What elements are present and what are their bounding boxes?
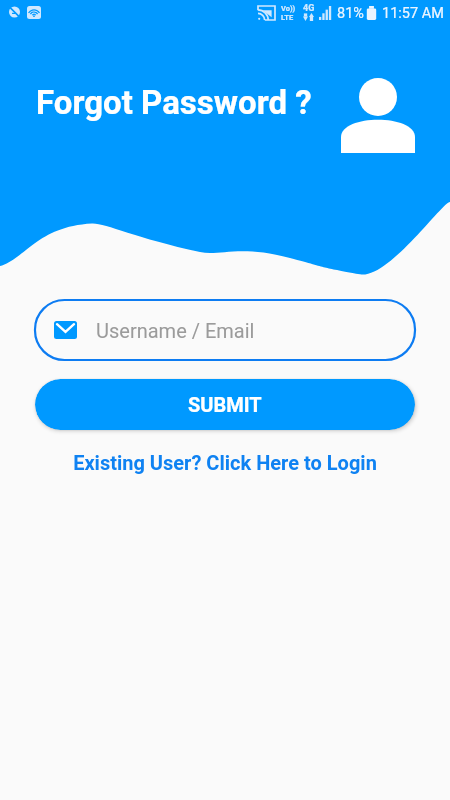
staticText: Forgot Password ? <box>36 83 312 122</box>
staticText: 4G <box>303 3 315 14</box>
staticText: Username / Email <box>96 319 255 342</box>
staticText: SUBMIT <box>188 393 262 416</box>
other: Battery <box>366 6 377 20</box>
staticText: LTE <box>281 13 294 22</box>
other: Wi-Fi <box>27 6 41 19</box>
button[interactable]: SUBMIT <box>35 379 415 430</box>
other: Signal strength <box>319 6 332 20</box>
staticText: 11:57 AM <box>382 5 444 22</box>
other: Cast <box>258 6 275 20</box>
button[interactable]: Username / Email <box>34 299 415 360</box>
other: Sound off <box>9 6 20 18</box>
button[interactable]: Existing User? Click Here to Login <box>0 446 450 478</box>
staticText: Existing User? Click Here to Login <box>73 451 377 474</box>
staticText: Vo)) <box>281 4 296 13</box>
staticText: 81% <box>337 5 364 22</box>
